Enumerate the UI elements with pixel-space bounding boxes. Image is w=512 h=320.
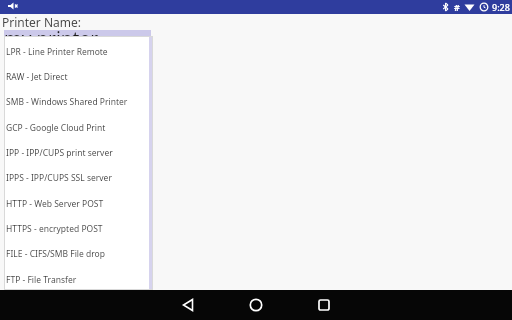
button[interactable] — [178, 295, 198, 315]
staticText: FTP - File Transfer — [6, 274, 77, 286]
button[interactable] — [314, 295, 334, 315]
button[interactable]: HTTP - Web Server POST — [4, 191, 153, 216]
button[interactable]: IPPS - IPP/CUPS SSL server — [4, 165, 153, 190]
staticText: LPR - Line Printer Remote — [6, 46, 108, 58]
staticText: SMB - Windows Shared Printer — [6, 96, 128, 108]
button[interactable]: FILE - CIFS/SMB File drop — [4, 241, 153, 266]
button[interactable]: HTTPS - encrypted POST — [4, 216, 153, 241]
staticText: 9:28 — [492, 1, 510, 13]
staticText: HTTPS - encrypted POST — [6, 223, 103, 235]
staticText: IPP - IPP/CUPS print server — [6, 147, 113, 159]
button[interactable]: LPR - Line Printer Remote — [4, 39, 153, 64]
button[interactable]: RAW - Jet Direct — [4, 64, 153, 89]
staticText: FILE - CIFS/SMB File drop — [6, 248, 105, 260]
button[interactable]: FTP - File Transfer — [4, 267, 153, 292]
staticText: Printer Name: — [2, 14, 81, 30]
button[interactable]: SMB - Windows Shared Printer — [4, 89, 153, 114]
staticText: HTTP - Web Server POST — [6, 198, 104, 210]
staticText: # — [454, 1, 460, 13]
staticText: GCP - Google Cloud Print — [6, 122, 106, 134]
button[interactable]: GCP - Google Cloud Print — [4, 115, 153, 140]
staticText: my printer — [4, 26, 98, 52]
staticText: IPPS - IPP/CUPS SSL server — [6, 172, 112, 184]
staticText: RAW - Jet Direct — [6, 71, 68, 83]
button[interactable] — [246, 295, 266, 315]
button[interactable]: IPP - IPP/CUPS print server — [4, 140, 153, 165]
